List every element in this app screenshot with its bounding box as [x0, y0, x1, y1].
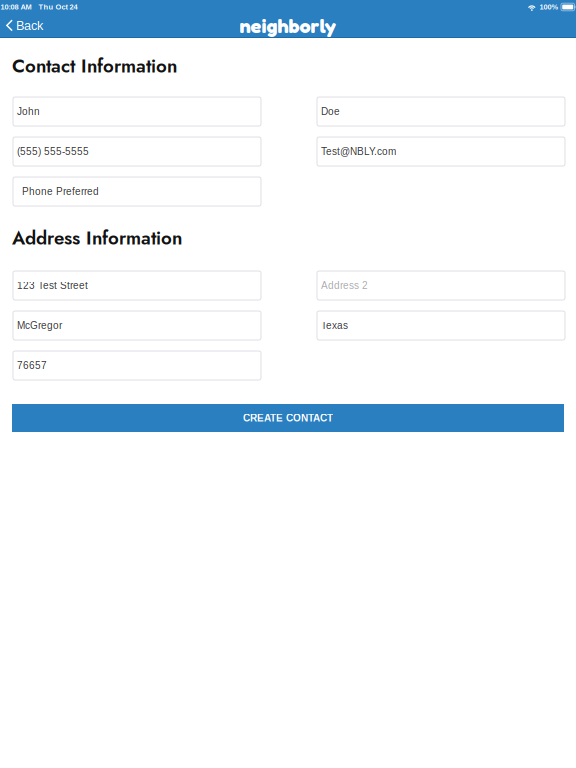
staticText: neighborly: [239, 13, 336, 38]
staticText: CREATE CONTACT: [243, 412, 333, 424]
staticText: Test@NBLY.com: [321, 146, 396, 157]
button[interactable]: CREATE CONTACT: [12, 404, 564, 432]
staticText: Address Information: [12, 224, 182, 251]
staticText: Contact Information: [12, 52, 177, 79]
staticText: 100%: [539, 3, 558, 11]
staticText: (555) 555-5555: [17, 146, 89, 157]
staticText: 10:08 AM: [0, 3, 31, 11]
staticText: John: [17, 106, 40, 117]
staticText: Texas: [321, 320, 348, 331]
staticText: Doe: [321, 106, 340, 117]
button[interactable]: Back: [0, 14, 53, 37]
staticText: 123 Test Street: [17, 280, 88, 291]
staticText: 76657: [17, 360, 47, 371]
staticText: Address 2: [321, 280, 368, 291]
staticText: Back: [16, 18, 43, 33]
staticText: McGregor: [17, 320, 62, 331]
staticText: Thu Oct 24: [38, 3, 77, 11]
staticText: Phone Preferred: [22, 186, 99, 197]
